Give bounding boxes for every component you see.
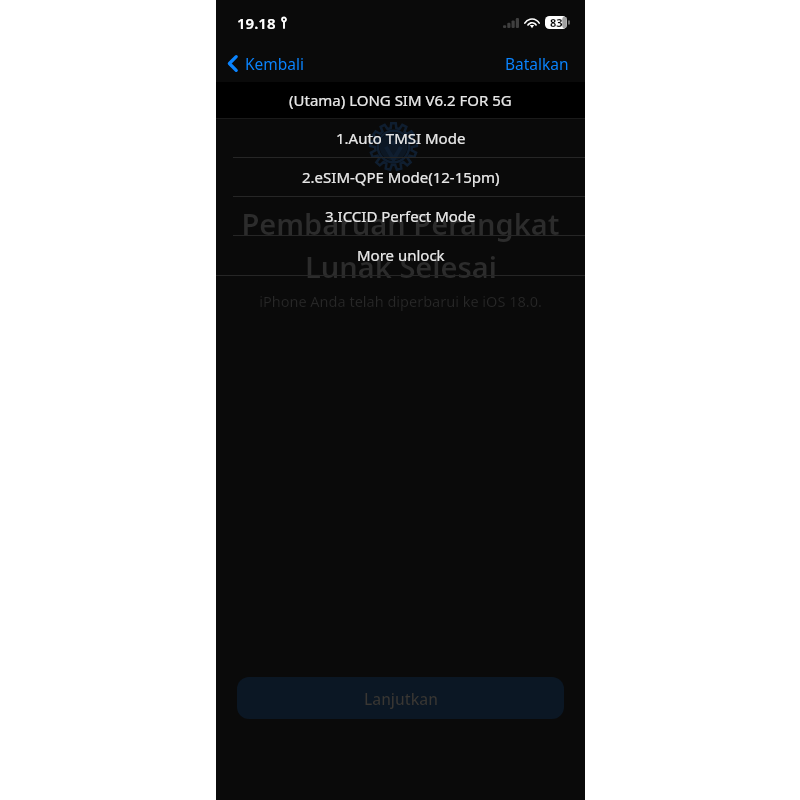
button[interactable]: Batalkan xyxy=(489,48,585,79)
staticText: Batalkan xyxy=(505,53,569,74)
staticText: Lanjutkan xyxy=(364,688,438,709)
staticText: 3.ICCID Perfect Mode xyxy=(325,206,476,226)
staticText: 19.18 xyxy=(237,13,276,33)
button[interactable]: 1.Auto TMSI Mode xyxy=(216,119,585,157)
staticText: Lunak Selesai xyxy=(305,247,497,286)
staticText: 2.eSIM-QPE Mode(12-15pm) xyxy=(302,167,500,187)
staticText: Pembaruan Perangkat xyxy=(241,204,560,243)
staticText: Kembali xyxy=(245,53,305,74)
staticText: (Utama) LONG SIM V6.2 FOR 5G xyxy=(289,90,512,110)
button[interactable]: Kembali (Back) xyxy=(216,48,315,79)
button[interactable]: 2.eSIM-QPE Mode(12-15pm) xyxy=(216,158,585,196)
staticText: 83 xyxy=(550,15,563,30)
button[interactable]: More unlock xyxy=(216,236,585,274)
button[interactable]: 3.ICCID Perfect Mode xyxy=(216,197,585,235)
button[interactable]: Lanjutkan xyxy=(237,677,564,719)
staticText: 1.Auto TMSI Mode xyxy=(336,128,466,148)
staticText: More unlock xyxy=(357,245,445,265)
staticText: iPhone Anda telah diperbarui ke iOS 18.0… xyxy=(259,291,542,311)
